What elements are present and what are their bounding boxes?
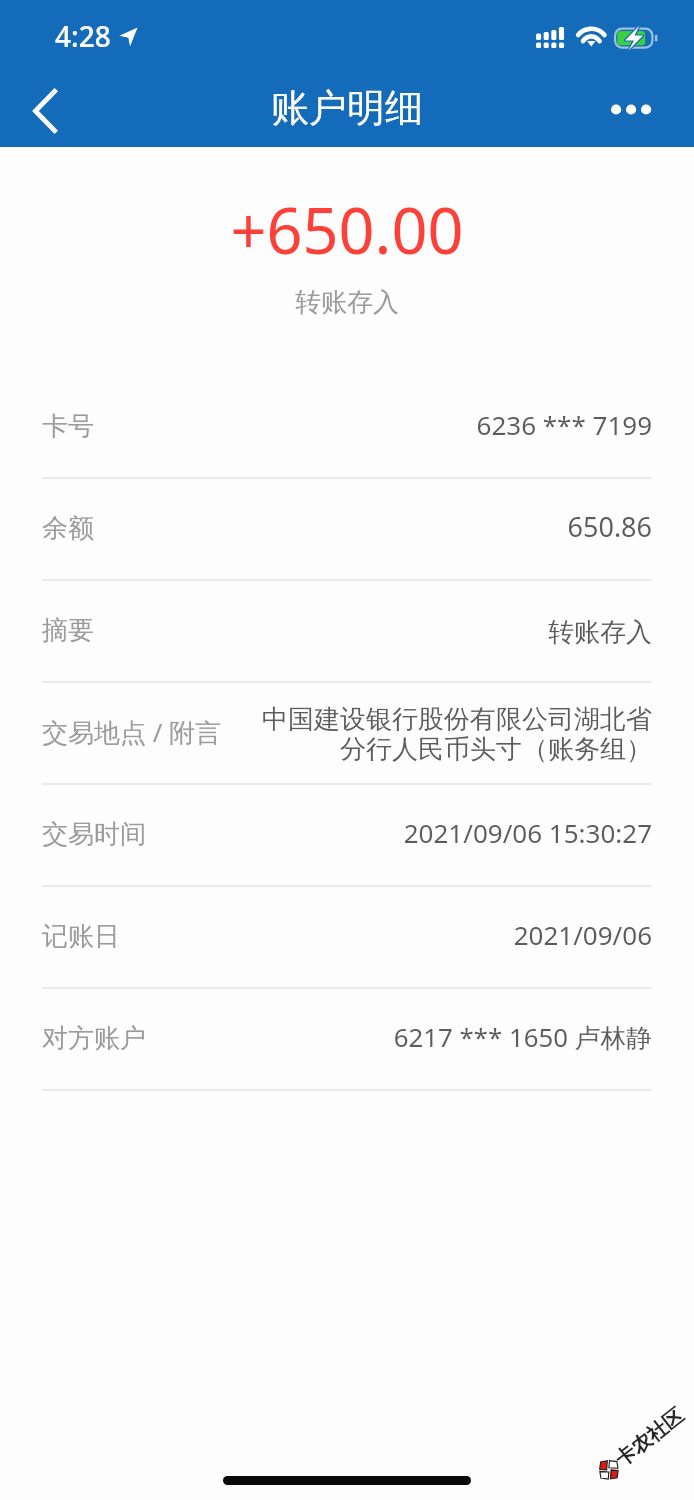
button[interactable]: 余额 xyxy=(0,479,694,581)
staticText: 交易地点 / 附言 xyxy=(42,714,222,750)
staticText: 账户明细 xyxy=(271,84,423,132)
staticText: 转账存入 xyxy=(104,616,652,649)
button[interactable]: 交易地点 / 附言 xyxy=(0,683,694,785)
staticText: 摘要 xyxy=(42,614,94,647)
button[interactable]: 对方账户 xyxy=(0,989,694,1091)
button[interactable]: Back xyxy=(0,72,92,147)
button[interactable]: 交易时间 xyxy=(0,785,694,887)
staticText: 交易时间 xyxy=(42,818,146,851)
staticText: 对方账户 xyxy=(42,1022,146,1055)
button[interactable]: 卡号 xyxy=(0,377,694,479)
staticText: 650.86 xyxy=(104,508,652,545)
staticText: 2021/09/06 xyxy=(130,917,652,952)
staticText: 6236 *** 7199 xyxy=(104,407,652,442)
button[interactable]: 记账日 xyxy=(0,887,694,989)
staticText: 中国建设银行股份有限公司湖北省 分行人民币头寸（账务组） xyxy=(232,703,652,766)
staticText: 4:28 xyxy=(55,17,111,55)
staticText: 转账存入 xyxy=(0,286,694,319)
staticText: 2021/09/06 15:30:27 xyxy=(156,815,652,850)
staticText: 记账日 xyxy=(42,920,120,953)
staticText: 卡号 xyxy=(42,410,94,443)
staticText: 6217 *** 1650 卢林静 xyxy=(156,1019,652,1054)
staticText: 卡农社区 xyxy=(610,1403,689,1472)
button[interactable]: More options xyxy=(602,72,694,147)
staticText: 余额 xyxy=(42,512,94,545)
button[interactable]: 摘要 xyxy=(0,581,694,683)
staticText: +650.00 xyxy=(0,187,694,273)
